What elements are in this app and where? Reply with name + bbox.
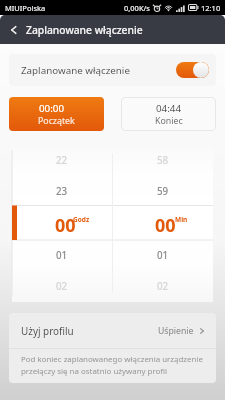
button[interactable]: 00 (155, 213, 176, 238)
staticText: Godz (73, 215, 90, 224)
button[interactable]: 01 (157, 249, 169, 262)
button[interactable]: 01 (56, 249, 68, 262)
staticText: MIUIPolska (5, 3, 46, 13)
staticText: 00 (55, 213, 76, 238)
staticText: 00 (155, 213, 176, 238)
staticText: Zaplanowane włączenie (26, 23, 143, 37)
staticText: Uśpienie (158, 325, 194, 337)
staticText: Zaplanowane włączenie (21, 64, 130, 77)
button[interactable]: Zaplanowane włączenie (9, 54, 216, 86)
button[interactable]: Użyj profilu (9, 313, 216, 348)
staticText: 12:10 (201, 3, 221, 13)
button[interactable]: 23 (56, 185, 68, 198)
staticText: 0,00K/s (124, 3, 150, 13)
button[interactable]: Back (0, 15, 225, 44)
staticText: 04:44 (156, 102, 182, 115)
button[interactable]: 59 (157, 185, 169, 198)
button[interactable]: 00:00 (9, 97, 104, 131)
staticText: Pod koniec zaplanowanego włączenia urząd… (21, 354, 203, 376)
button[interactable]: 58 (157, 154, 169, 167)
button[interactable]: 02 (56, 280, 68, 293)
button[interactable]: 04:44 (121, 97, 216, 131)
button[interactable]: 00 (55, 213, 76, 238)
staticText: 00:00 (39, 102, 65, 115)
button[interactable]: 02 (157, 280, 169, 293)
button[interactable]: 22 (56, 154, 68, 167)
other: Back (7, 23, 21, 37)
staticText: Użyj profilu (21, 324, 74, 337)
staticText: Min (175, 215, 188, 224)
staticText: Początek (38, 115, 75, 127)
staticText: Koniec (155, 115, 183, 127)
